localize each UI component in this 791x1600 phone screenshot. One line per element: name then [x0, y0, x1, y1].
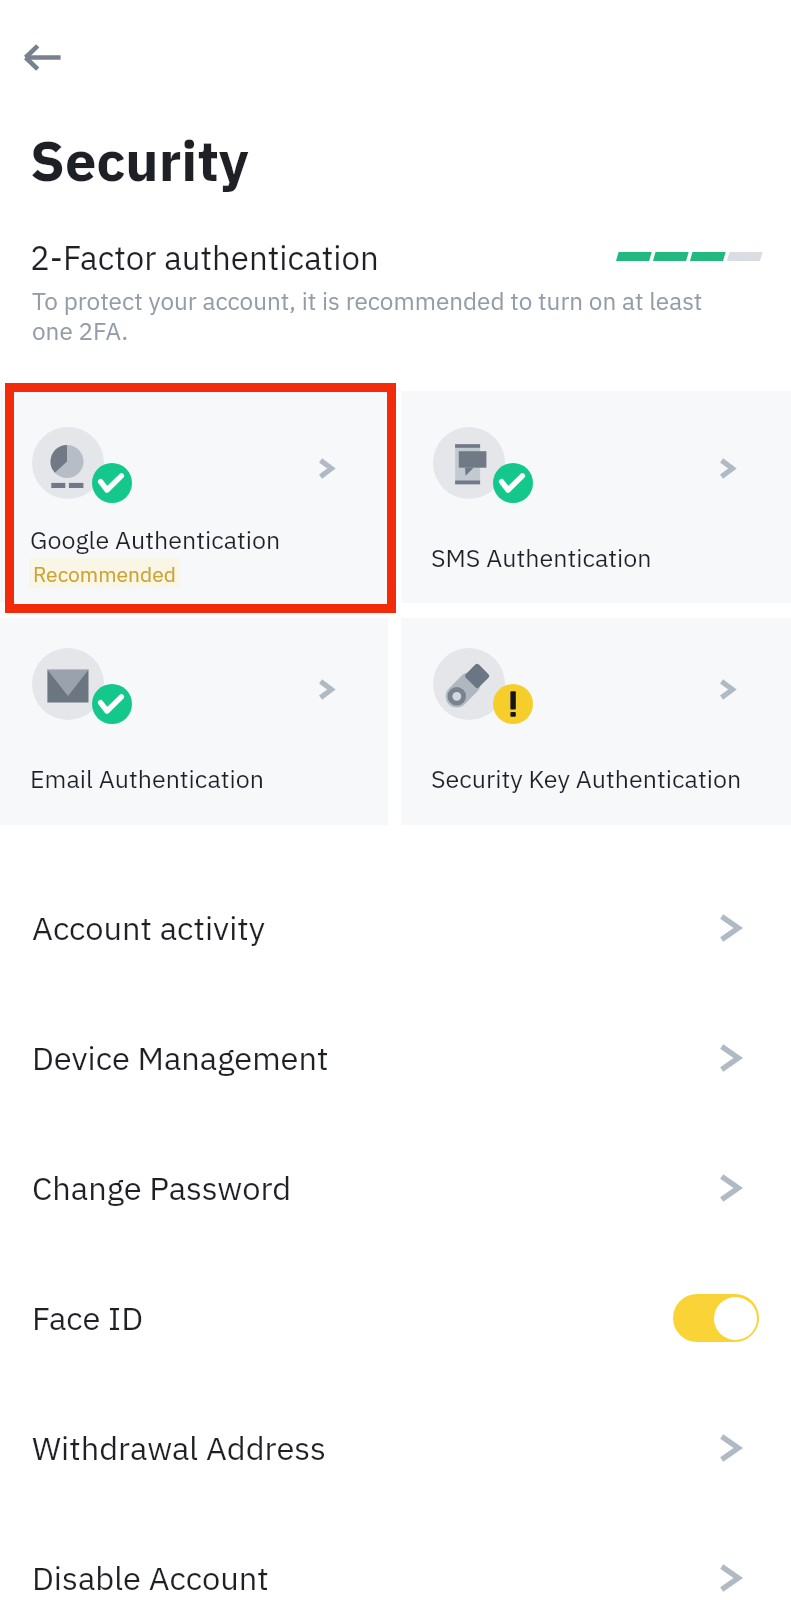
button[interactable]: Open Account activity — [700, 898, 760, 958]
button[interactable]: Open Withdrawal Address — [700, 1418, 760, 1478]
staticText: 2-Factor authentication — [30, 236, 379, 279]
button[interactable]: Open Security Key Authentication — [401, 618, 791, 825]
staticText: Security Key Authentication — [431, 762, 742, 795]
button[interactable]: Open Email Authentication — [296, 659, 356, 719]
staticText: Google Authentication — [30, 523, 281, 556]
staticText: Email Authentication — [30, 762, 265, 795]
button[interactable]: Open Email Authentication — [0, 618, 388, 825]
button[interactable]: Device Management — [0, 993, 791, 1123]
staticText: Security — [30, 124, 249, 197]
staticText: Change Password — [32, 1167, 292, 1209]
button[interactable]: Open Security Key Authentication — [697, 659, 757, 719]
button[interactable]: Open Change Password — [700, 1158, 760, 1218]
button[interactable]: Disable Account — [0, 1513, 791, 1600]
button[interactable]: Open SMS Authentication — [697, 438, 757, 498]
button[interactable]: Toggle Face ID — [673, 1294, 759, 1342]
button[interactable]: Back — [14, 29, 71, 86]
button[interactable]: Change Password — [0, 1123, 791, 1253]
staticText: Disable Account — [32, 1557, 269, 1599]
button[interactable]: Open SMS Authentication — [401, 391, 791, 603]
staticText: Device Management — [32, 1037, 329, 1079]
staticText: SMS Authentication — [431, 541, 652, 574]
staticText: Recommended — [33, 560, 176, 587]
button[interactable]: Withdrawal Address — [0, 1383, 791, 1513]
button[interactable]: Open Disable Account — [700, 1548, 760, 1600]
button[interactable]: Open Google Authentication — [0, 391, 388, 603]
staticText: Withdrawal Address — [32, 1427, 326, 1469]
staticText: To protect your account, it is recommend… — [32, 285, 732, 347]
button[interactable]: Face ID — [0, 1253, 791, 1383]
staticText: Face ID — [32, 1297, 144, 1339]
button[interactable]: Account activity — [0, 863, 791, 993]
button[interactable]: Open Google Authentication — [296, 438, 356, 498]
staticText: Account activity — [32, 907, 265, 949]
button[interactable]: Open Device Management — [700, 1028, 760, 1088]
